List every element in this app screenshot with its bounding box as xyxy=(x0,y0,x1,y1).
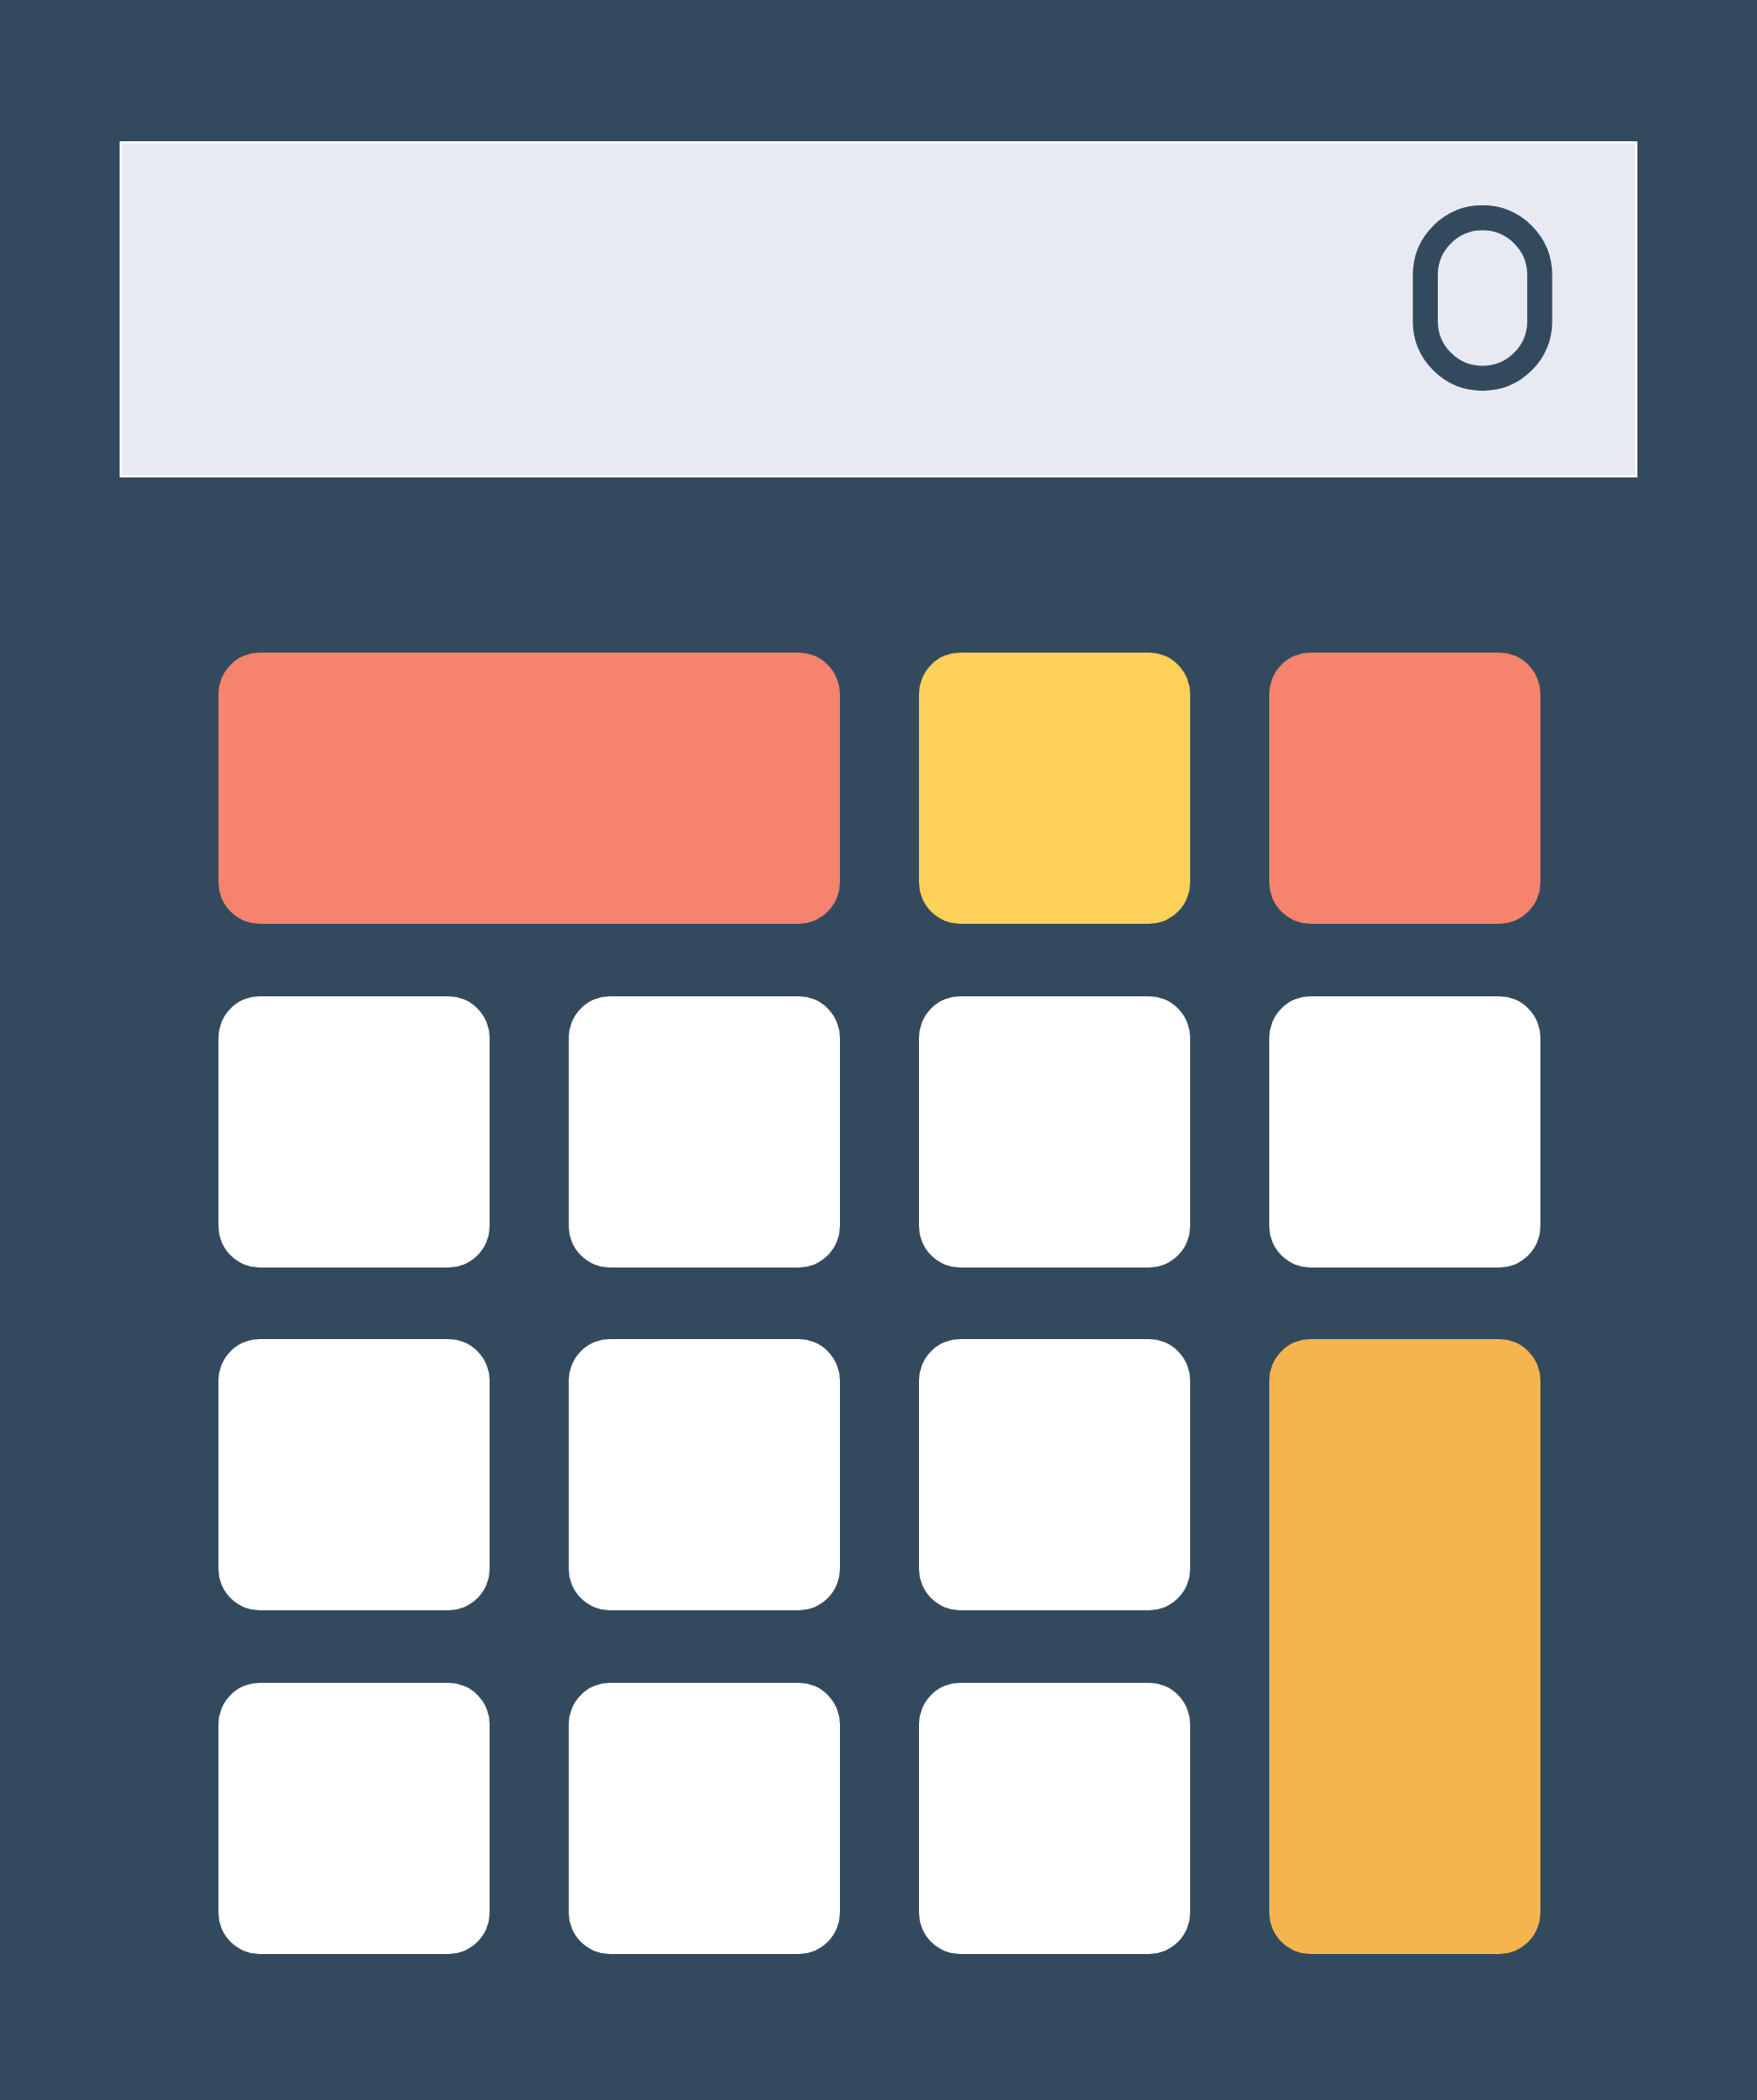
button[interactable]: Two xyxy=(569,1683,840,1954)
button[interactable]: Three xyxy=(919,1683,1190,1954)
button[interactable]: Five xyxy=(569,1339,840,1610)
button[interactable]: Equals xyxy=(1269,1339,1540,1954)
button[interactable]: Four xyxy=(218,1339,490,1610)
button[interactable]: Clear xyxy=(218,653,840,924)
button[interactable]: Nine xyxy=(919,996,1190,1268)
button[interactable]: Display showing 0 xyxy=(120,141,1637,477)
button[interactable]: Eight xyxy=(569,996,840,1268)
button[interactable]: Six xyxy=(919,1339,1190,1610)
button[interactable]: Multiply xyxy=(1269,996,1540,1268)
button[interactable]: Seven xyxy=(218,996,490,1268)
button[interactable]: Divide xyxy=(1269,653,1540,924)
button[interactable]: One xyxy=(218,1683,490,1954)
button[interactable]: Percent xyxy=(919,653,1190,924)
